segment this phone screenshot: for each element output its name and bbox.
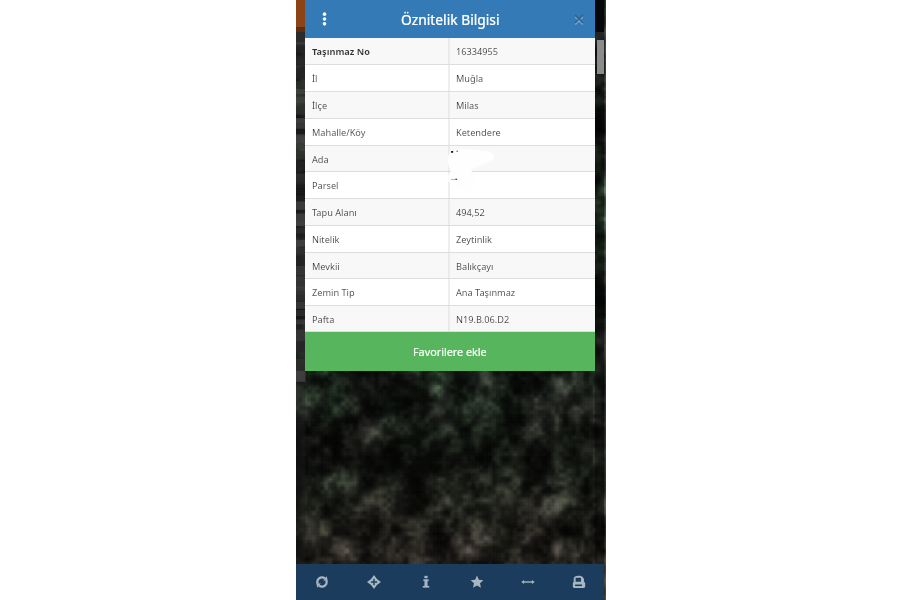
button[interactable]: Mahalle/Köy <box>305 119 595 146</box>
staticText: Ada <box>312 153 329 166</box>
staticText: N19.B.06.D2 <box>456 313 510 326</box>
button[interactable]: Ada <box>305 146 595 172</box>
button[interactable]: Refresh <box>296 564 348 600</box>
staticText: Mevkii <box>312 260 340 273</box>
button[interactable]: Favorites <box>451 564 502 600</box>
button[interactable]: İl <box>305 65 595 92</box>
staticText: Balıkçayı <box>456 260 494 273</box>
button[interactable]: Measure distance <box>502 564 553 600</box>
staticText: Ana Taşınmaz <box>456 286 516 299</box>
button[interactable]: Mevkii <box>305 253 595 279</box>
staticText: Zeytinlik <box>456 233 492 246</box>
button[interactable]: Info <box>400 564 451 600</box>
staticText: 16334955 <box>456 45 499 58</box>
button[interactable]: Zemin Tip <box>305 279 595 306</box>
staticText: Tapu Alanı <box>312 206 357 219</box>
staticText: Taşınmaz No <box>312 45 370 58</box>
button[interactable]: Print <box>553 564 604 600</box>
staticText: İl <box>312 72 318 85</box>
staticText: Favorilere ekle <box>413 344 487 359</box>
staticText: Pafta <box>312 313 335 326</box>
button[interactable]: Pafta <box>305 306 595 332</box>
staticText: 494,52 <box>456 206 485 219</box>
button[interactable]: Favorilere ekle <box>305 332 595 371</box>
button[interactable]: Locate me <box>348 564 400 600</box>
button[interactable]: Parsel <box>305 172 595 199</box>
button[interactable]: More options <box>312 7 336 31</box>
button[interactable]: Tapu Alanı <box>305 199 595 226</box>
button[interactable]: Taşınmaz No <box>305 38 595 65</box>
button[interactable]: Close <box>568 8 590 30</box>
staticText: İlçe <box>312 99 328 112</box>
staticText: Öznitelik Bilgisi <box>401 10 500 29</box>
button[interactable]: İlçe <box>305 92 595 119</box>
staticText: Ketendere <box>456 126 501 139</box>
staticText: Mahalle/Köy <box>312 126 366 139</box>
staticText: Zemin Tip <box>312 286 355 299</box>
staticText: Milas <box>456 99 479 112</box>
staticText: Muğla <box>456 72 484 85</box>
staticText: Parsel <box>312 179 339 192</box>
button[interactable]: Nitelik <box>305 226 595 253</box>
staticText: Nitelik <box>312 233 340 246</box>
